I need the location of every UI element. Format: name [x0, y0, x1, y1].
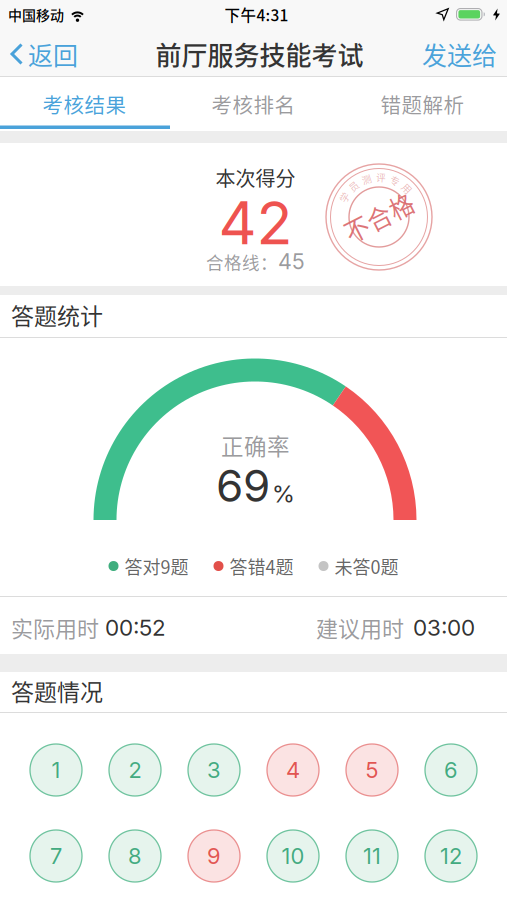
staticText: 测: [362, 172, 372, 186]
staticText: 00:52: [105, 614, 166, 641]
button[interactable]: 错题解析: [338, 77, 507, 131]
staticText: 发送给: [422, 36, 497, 72]
staticText: 合格线：: [206, 249, 278, 274]
button[interactable]: 10: [267, 830, 319, 882]
staticText: 员: [349, 179, 359, 193]
button[interactable]: 5: [346, 744, 398, 796]
staticText: 9: [207, 843, 221, 869]
staticText: 中国移动: [8, 4, 64, 25]
staticText: 1: [51, 757, 60, 783]
staticText: 正确率: [221, 429, 290, 462]
button[interactable]: 返回: [0, 36, 78, 72]
staticText: 返回: [28, 36, 78, 72]
staticText: %: [272, 479, 295, 508]
staticText: 12: [440, 843, 462, 869]
button[interactable]: 考核结果: [0, 77, 169, 131]
staticText: 专: [390, 174, 400, 187]
staticText: 不合格: [341, 199, 416, 235]
staticText: 11: [363, 843, 381, 869]
button[interactable]: 8: [109, 830, 161, 882]
staticText: 6: [444, 757, 458, 783]
staticText: 3: [207, 757, 221, 783]
staticText: 用: [402, 182, 412, 196]
staticText: 答错4题: [229, 553, 293, 579]
staticText: 答题统计: [11, 298, 103, 331]
staticText: 4: [286, 757, 300, 783]
button[interactable]: 9: [188, 830, 240, 882]
staticText: 69: [216, 459, 270, 512]
staticText: 2: [128, 757, 141, 783]
staticText: 答对9题: [124, 553, 188, 579]
staticText: 考核结果: [42, 89, 126, 119]
staticText: 建议用时: [316, 612, 404, 643]
staticText: 45: [278, 248, 305, 274]
staticText: 下午4:31: [224, 3, 288, 26]
staticText: 7: [50, 843, 62, 869]
staticText: 错题解析: [380, 89, 464, 119]
button[interactable]: 2: [109, 744, 161, 796]
staticText: 评: [376, 170, 386, 184]
staticText: 5: [365, 757, 378, 783]
staticText: 未答0题: [334, 553, 398, 579]
staticText: 前厅服务技能考试: [155, 35, 363, 73]
button[interactable]: 11: [346, 830, 398, 882]
button[interactable]: 发送给: [422, 36, 507, 72]
button[interactable]: 7: [30, 830, 82, 882]
staticText: 8: [128, 843, 142, 869]
staticText: 学: [339, 190, 349, 204]
button[interactable]: 6: [425, 744, 477, 796]
staticText: 03:00: [413, 614, 475, 641]
staticText: 实际用时: [11, 612, 99, 643]
button[interactable]: 考核排名: [169, 77, 338, 131]
staticText: 答题情况: [11, 674, 103, 707]
button[interactable]: 3: [188, 744, 240, 796]
button[interactable]: 12: [425, 830, 477, 882]
button[interactable]: 1: [30, 744, 82, 796]
staticText: 42: [218, 187, 292, 258]
staticText: 本次得分: [215, 163, 295, 192]
button[interactable]: 4: [267, 744, 319, 796]
staticText: 10: [281, 843, 304, 869]
staticText: 考核排名: [211, 89, 295, 119]
